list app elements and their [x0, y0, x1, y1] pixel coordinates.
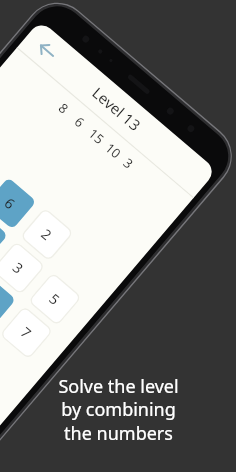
staticText: Solve the level by combining the numbers [58, 374, 179, 446]
button[interactable]: Solve the level by combining the numbers [0, 368, 236, 472]
